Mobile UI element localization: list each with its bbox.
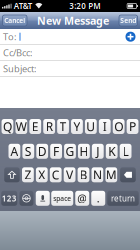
- staticText: P: [129, 118, 136, 134]
- staticText: S: [25, 143, 32, 159]
- button[interactable]: space: [51, 191, 73, 206]
- button[interactable]: return: [107, 191, 139, 206]
- button[interactable]: L: [120, 144, 131, 159]
- button[interactable]: P: [127, 119, 138, 134]
- staticText: E: [32, 118, 39, 134]
- staticText: B: [79, 167, 87, 183]
- button[interactable]: Send: [119, 15, 137, 26]
- staticText: T: [60, 118, 67, 134]
- staticText: return: [111, 193, 135, 204]
- button[interactable]: V: [64, 167, 75, 182]
- button[interactable]: 123: [1, 191, 17, 206]
- button[interactable]: I: [99, 119, 111, 134]
- staticText: N: [93, 167, 102, 183]
- staticText: Cc/Bcc:: [3, 46, 33, 59]
- button[interactable]: F: [50, 144, 62, 159]
- staticText: Z: [24, 167, 31, 183]
- button[interactable]: T: [57, 119, 69, 134]
- staticText: New Message: [37, 13, 109, 28]
- button[interactable]: G: [64, 144, 76, 159]
- staticText: space: [53, 194, 71, 203]
- staticText: Cancel: [4, 16, 25, 25]
- staticText: 3:20 PM: [69, 1, 100, 11]
- button[interactable]: R: [43, 119, 55, 134]
- button[interactable]: Dictation: [36, 191, 50, 206]
- staticText: L: [123, 143, 129, 159]
- staticText: D: [38, 143, 47, 159]
- staticText: C: [52, 167, 60, 183]
- staticText: U: [86, 118, 95, 134]
- button[interactable]: E: [29, 119, 41, 134]
- staticText: H: [79, 143, 88, 159]
- button[interactable]: O: [113, 119, 125, 134]
- staticText: Subject:: [3, 62, 37, 75]
- staticText: W: [16, 118, 27, 134]
- staticText: F: [53, 143, 59, 159]
- button[interactable]: X: [36, 167, 48, 182]
- button[interactable]: K: [106, 144, 118, 159]
- staticText: .: [97, 191, 100, 205]
- staticText: AT&T: [12, 1, 33, 11]
- staticText: K: [108, 143, 115, 159]
- staticText: V: [66, 167, 73, 183]
- button[interactable]: Add contact: [124, 30, 137, 43]
- button[interactable]: C: [50, 167, 62, 182]
- button[interactable]: J: [92, 144, 104, 159]
- button[interactable]: Cancel: [2, 15, 27, 26]
- button[interactable]: W: [15, 119, 27, 134]
- staticText: Y: [73, 118, 80, 134]
- staticText: X: [38, 167, 45, 183]
- button[interactable]: Delete: [120, 167, 136, 182]
- staticText: Send: [120, 16, 136, 25]
- button[interactable]: Next keyboard: [19, 191, 33, 206]
- staticText: R: [46, 118, 53, 134]
- button[interactable]: Z: [22, 167, 34, 182]
- staticText: @: [77, 191, 87, 205]
- button[interactable]: Q: [2, 119, 13, 134]
- staticText: J: [96, 143, 99, 159]
- button[interactable]: Y: [71, 119, 83, 134]
- button[interactable]: Shift: [4, 167, 20, 182]
- button[interactable]: .: [91, 191, 105, 206]
- button[interactable]: H: [78, 144, 90, 159]
- button[interactable]: @: [75, 191, 89, 206]
- staticText: 123: [2, 193, 17, 204]
- button[interactable]: M: [105, 167, 117, 182]
- staticText: Q: [3, 118, 12, 134]
- button[interactable]: N: [91, 167, 103, 182]
- staticText: I: [103, 118, 107, 134]
- staticText: G: [65, 143, 74, 159]
- button[interactable]: S: [22, 144, 34, 159]
- staticText: A: [10, 143, 18, 159]
- button[interactable]: A: [8, 144, 20, 159]
- button[interactable]: D: [36, 144, 48, 159]
- staticText: M: [106, 167, 117, 183]
- button[interactable]: B: [78, 167, 89, 182]
- button[interactable]: U: [85, 119, 97, 134]
- staticText: O: [114, 118, 123, 134]
- staticText: To:: [3, 30, 17, 43]
